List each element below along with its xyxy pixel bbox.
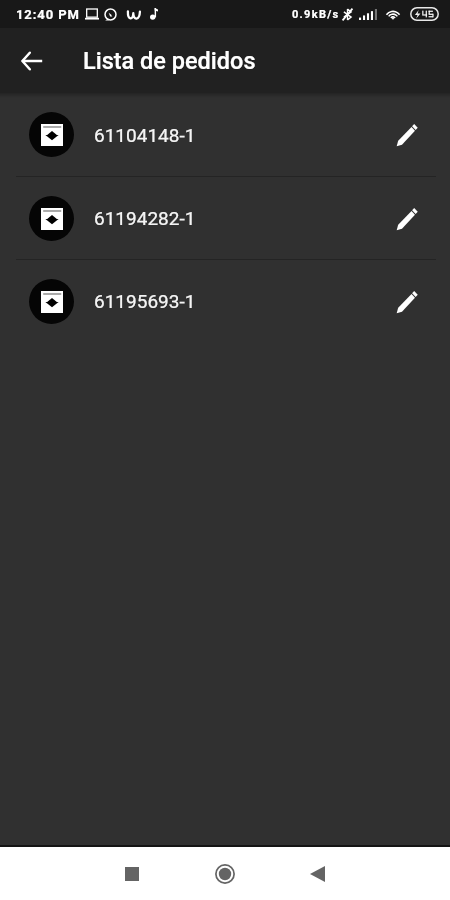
button[interactable]: Edit xyxy=(385,279,430,324)
button[interactable]: 61104148-1 xyxy=(0,93,450,176)
button[interactable]: Back xyxy=(287,847,347,900)
button[interactable]: Back xyxy=(0,28,64,93)
button[interactable]: 61195693-1 xyxy=(0,260,450,342)
button[interactable]: Edit xyxy=(385,196,430,241)
button[interactable]: Home xyxy=(195,847,255,900)
button[interactable]: 61194282-1 xyxy=(0,177,450,259)
button[interactable]: Edit xyxy=(385,112,430,157)
staticText: 61104148-1 xyxy=(94,124,196,146)
staticText: Lista de pedidos xyxy=(83,47,256,75)
staticText: 61195693-1 xyxy=(94,290,196,312)
staticText: 0.9kB/s xyxy=(292,8,340,21)
button[interactable]: Recents xyxy=(102,847,162,900)
staticText: 12:40 PM xyxy=(16,7,80,22)
staticText: 61194282-1 xyxy=(94,207,196,229)
